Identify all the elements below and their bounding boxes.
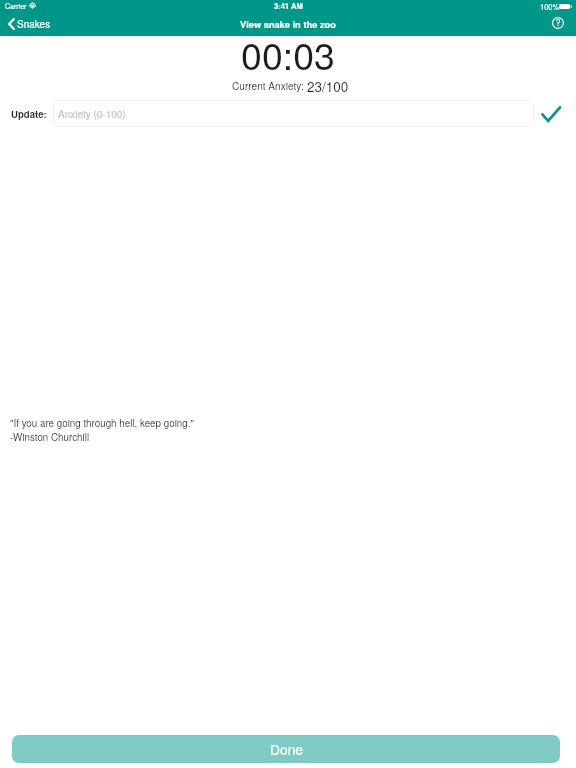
staticText: 23/100 [307,77,349,96]
button[interactable]: Submit anxiety [533,100,569,127]
button[interactable]: Snakes [0,14,59,34]
staticText: Current Anxiety: [232,78,304,92]
staticText: Anxiety (0-100) [58,107,126,121]
staticText: Done [270,739,303,759]
staticText: View snake in the zoo [240,18,336,31]
staticText: "If you are going through hell, keep goi… [10,416,194,430]
staticText: 100% [540,1,560,12]
staticText: Update: [11,107,47,121]
button[interactable]: Anxiety (0-100) [53,100,534,127]
button[interactable]: Help [545,10,570,35]
staticText: -Winston Churchill [10,430,90,444]
staticText: 00:03 [0,27,576,81]
staticText: 3:41 AM [274,1,303,12]
button[interactable]: Done [12,735,560,763]
staticText: ? [555,16,561,29]
staticText: Snakes [17,17,51,31]
staticText: Carrier [5,1,27,11]
